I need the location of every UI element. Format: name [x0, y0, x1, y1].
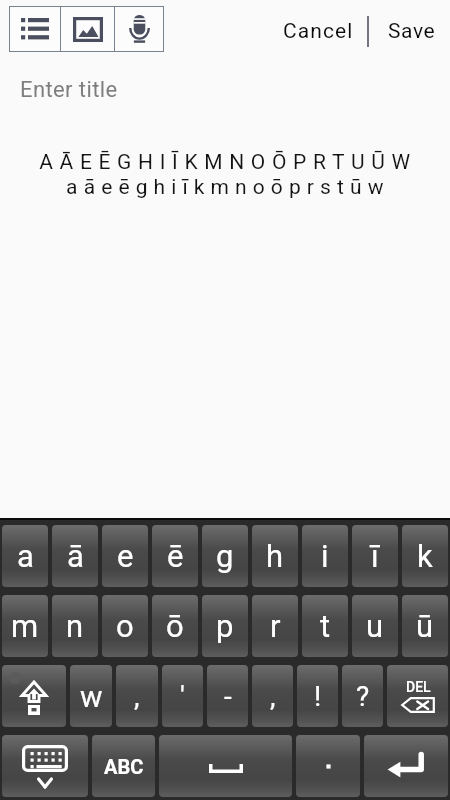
staticText: Save	[388, 19, 436, 44]
staticText: DEL	[406, 679, 431, 695]
button[interactable]: Voice input	[115, 6, 164, 52]
button[interactable]: -	[207, 665, 248, 727]
button[interactable]: Insert image	[61, 6, 114, 52]
staticText: h	[266, 538, 284, 574]
button[interactable]: ī	[352, 525, 398, 587]
staticText: -	[224, 680, 232, 713]
button[interactable]: n	[52, 595, 98, 657]
staticText: k	[417, 538, 433, 574]
button[interactable]: ABC	[92, 735, 155, 797]
staticText: a ā e ē g h i ī k m n o ō p r s t ū w	[66, 175, 384, 200]
button[interactable]: !	[297, 665, 338, 727]
button[interactable]: h	[252, 525, 298, 587]
button[interactable]: u	[352, 595, 398, 657]
staticText: m	[11, 608, 39, 644]
button[interactable]: ē	[152, 525, 198, 587]
staticText: n	[66, 608, 84, 644]
staticText: ē	[167, 538, 184, 574]
button[interactable]: ,	[252, 665, 293, 727]
button[interactable]	[2, 665, 66, 727]
button[interactable]: t	[302, 595, 348, 657]
button[interactable]: ,	[116, 665, 158, 727]
button[interactable]: Save	[369, 9, 450, 53]
button[interactable]: ō	[152, 595, 198, 657]
button[interactable]: Checklist	[9, 6, 60, 52]
button[interactable]: '	[162, 665, 203, 727]
button[interactable]: Enter title	[20, 68, 450, 112]
staticText: ,	[270, 680, 276, 713]
staticText: A Ā E Ē G H I Ī K M N O Ō P R T U Ū W	[39, 150, 411, 175]
staticText: g	[216, 538, 234, 574]
button[interactable]: o	[102, 595, 148, 657]
button[interactable]: ā	[52, 525, 98, 587]
staticText: p	[216, 608, 234, 644]
staticText: u	[366, 608, 384, 644]
button[interactable]	[159, 735, 292, 797]
button[interactable]: e	[102, 525, 148, 587]
button[interactable]: m	[2, 595, 48, 657]
staticText: t	[320, 608, 331, 644]
staticText: o	[116, 608, 134, 644]
button[interactable]: i	[302, 525, 348, 587]
button[interactable]: k	[402, 525, 448, 587]
staticText: ,	[134, 680, 140, 713]
button[interactable]: p	[202, 595, 248, 657]
staticText: ?	[356, 680, 370, 713]
button[interactable]: a	[2, 525, 48, 587]
staticText: e	[117, 538, 134, 574]
staticText: !	[314, 680, 322, 713]
staticText: i	[321, 538, 329, 574]
button[interactable]: r	[252, 595, 298, 657]
button[interactable]	[2, 735, 88, 797]
button[interactable]: ?	[342, 665, 383, 727]
staticText: ī	[371, 538, 379, 574]
button[interactable]: ū	[402, 595, 448, 657]
button[interactable]	[364, 735, 448, 797]
button[interactable]: g	[202, 525, 248, 587]
button[interactable]: DEL	[387, 665, 448, 727]
button[interactable]	[296, 735, 360, 797]
staticText: '	[180, 680, 185, 713]
staticText: ABC	[104, 755, 144, 778]
staticText: ō	[166, 608, 184, 644]
staticText: ā	[67, 538, 84, 574]
staticText: ū	[416, 608, 434, 644]
staticText: Cancel	[283, 19, 354, 44]
staticText: r	[270, 608, 281, 644]
button[interactable]: w	[70, 665, 112, 727]
staticText: w	[80, 679, 103, 714]
staticText: Enter title	[20, 77, 118, 103]
staticText: a	[17, 538, 34, 574]
button[interactable]: Cancel	[271, 9, 367, 53]
